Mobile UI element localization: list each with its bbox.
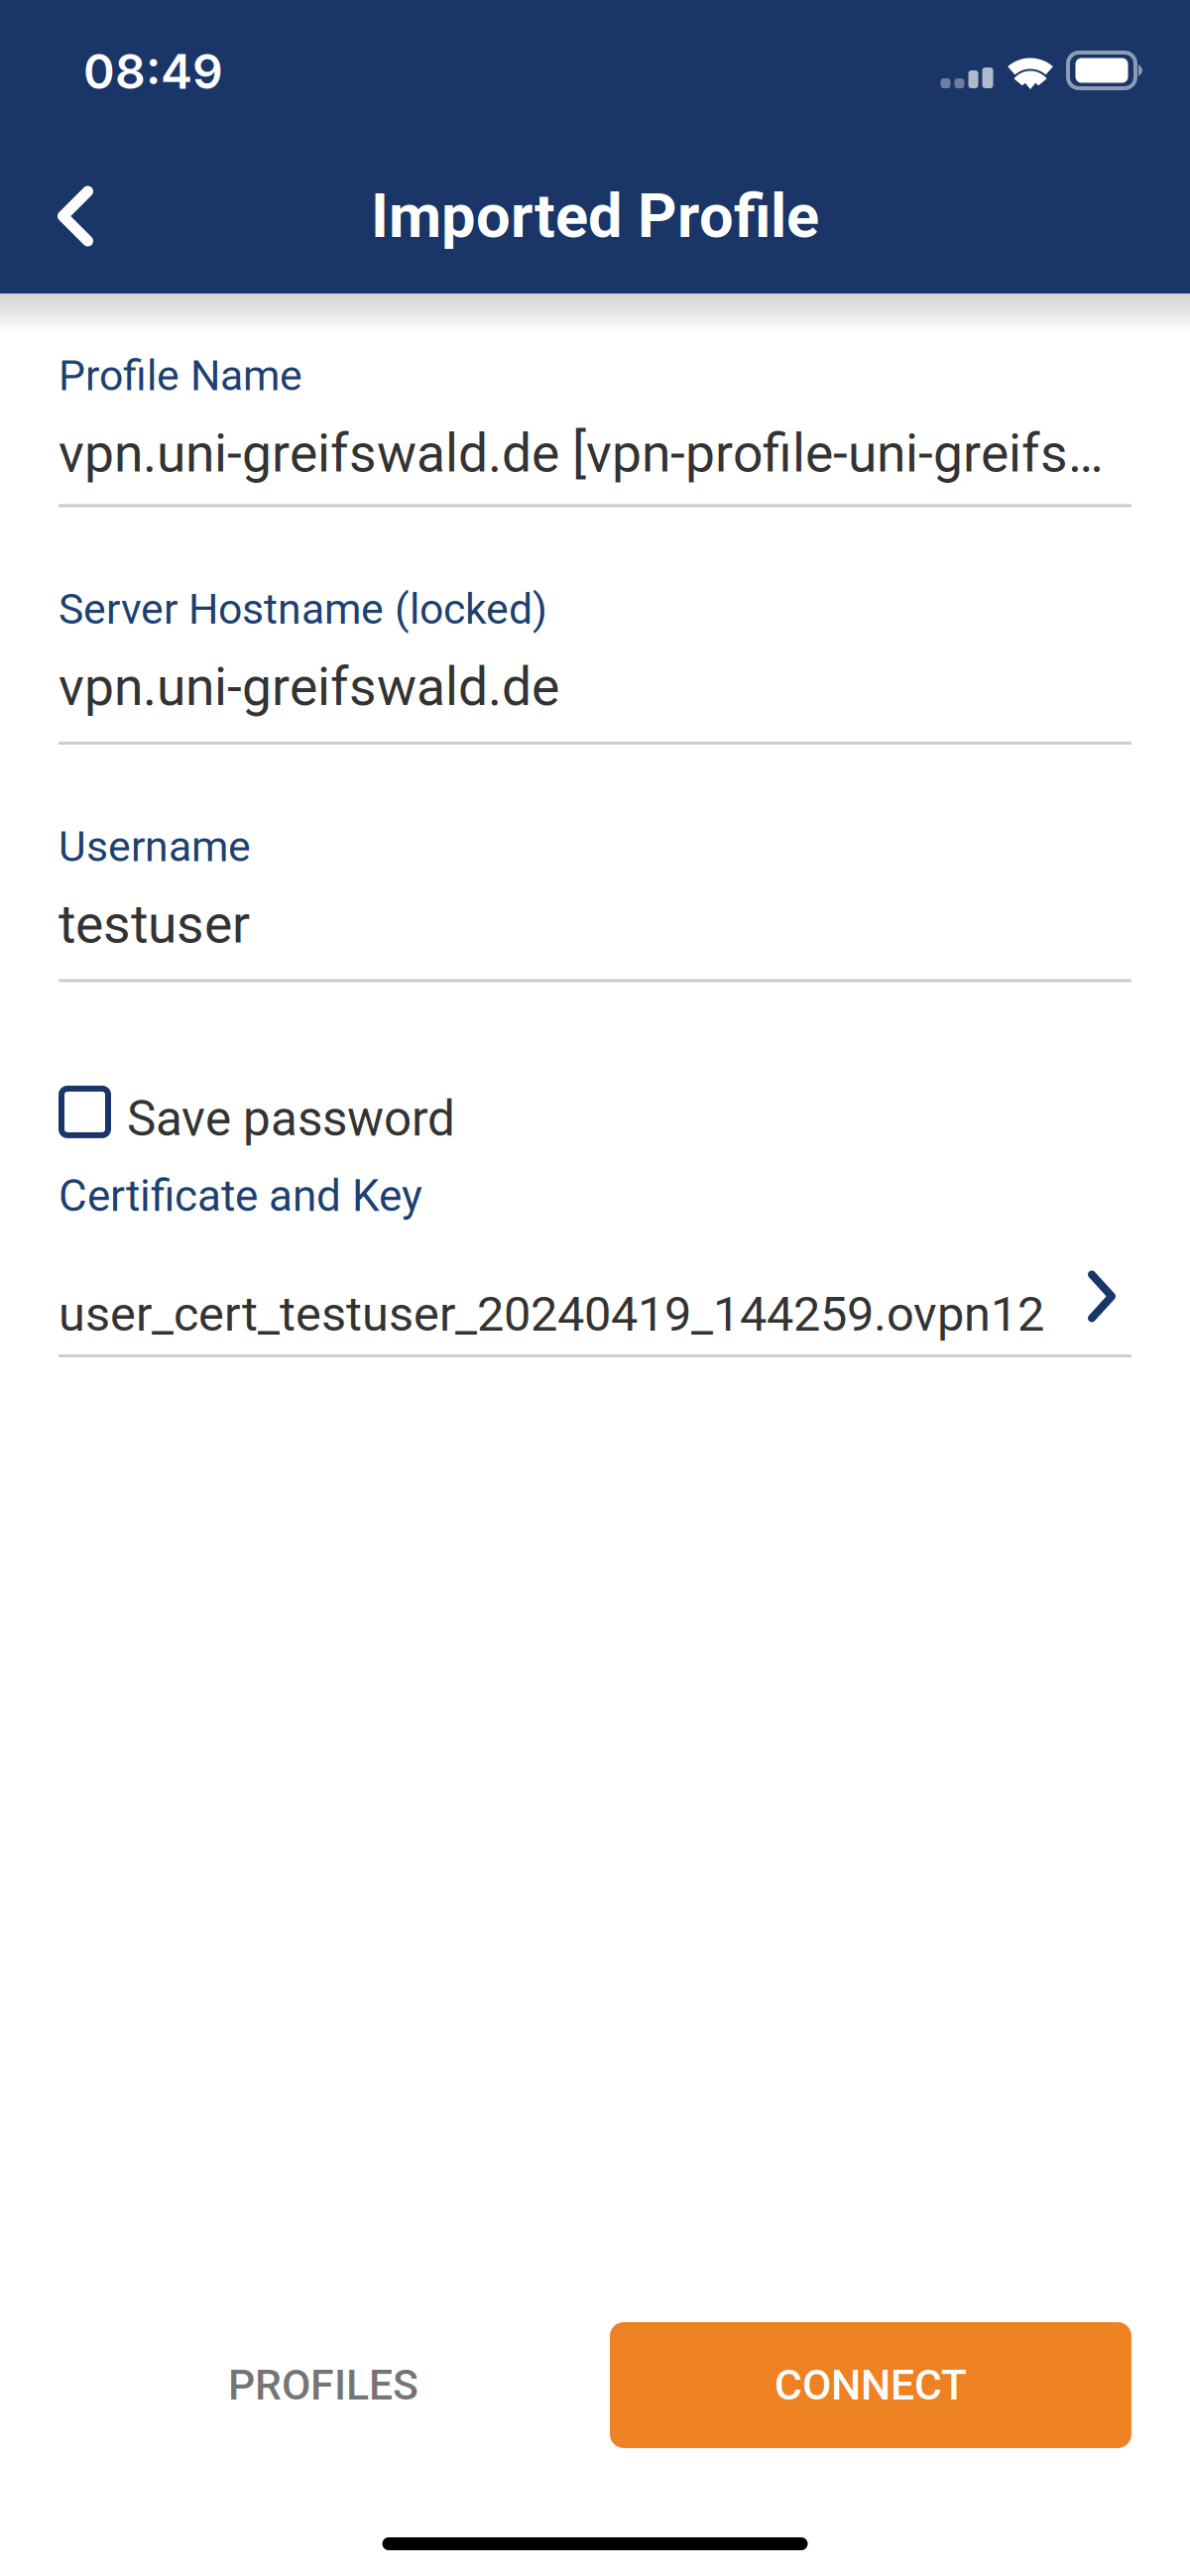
button[interactable]: CONNECT <box>610 2322 1131 2448</box>
button[interactable]: Back <box>0 153 143 279</box>
staticText: PROFILES <box>228 2360 418 2410</box>
staticText: 08:49 <box>83 43 223 100</box>
staticText: testuser <box>59 893 250 955</box>
staticText: user_cert_testuser_20240419_144259.ovpn1… <box>59 1286 1044 1342</box>
staticText: Certificate and Key <box>59 1170 422 1221</box>
staticText: Imported Profile <box>371 181 819 252</box>
button[interactable]: PROFILES <box>226 2322 420 2448</box>
staticText: Save password <box>127 1090 455 1147</box>
staticText: Server Hostname (locked) <box>59 585 547 634</box>
staticText: Profile Name <box>59 351 302 401</box>
staticText: vpn.uni-greifswald.de [vpn-profile-uni-g… <box>59 422 1104 484</box>
button[interactable]: user_cert_testuser_20240419_144259.ovpn1… <box>59 1286 1131 1357</box>
staticText: CONNECT <box>774 2360 967 2410</box>
button[interactable]: Save password <box>59 1095 1131 1152</box>
staticText: vpn.uni-greifswald.de <box>59 656 559 718</box>
staticText: Username <box>59 822 251 872</box>
